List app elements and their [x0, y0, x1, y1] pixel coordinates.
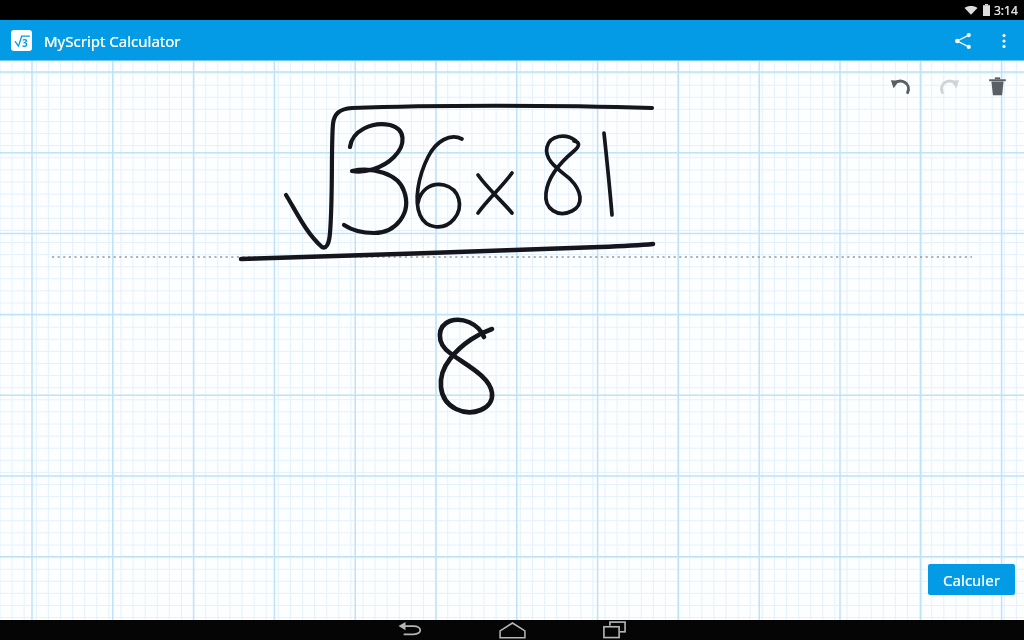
button[interactable]: Redo: [925, 62, 973, 110]
staticText: 3: [22, 36, 28, 50]
staticText: Calculer: [943, 570, 1000, 590]
button[interactable]: Delete: [973, 62, 1021, 110]
button[interactable]: Share: [942, 20, 983, 61]
button[interactable]: Home: [461, 620, 563, 640]
button[interactable]: More options: [983, 20, 1024, 61]
button[interactable]: Back: [359, 620, 461, 640]
button[interactable]: Recent apps: [563, 620, 665, 640]
staticText: 3:14: [994, 2, 1018, 18]
button[interactable]: Undo: [877, 62, 925, 110]
button[interactable]: Calculer: [928, 564, 1015, 595]
staticText: MyScript Calculator: [44, 31, 181, 51]
